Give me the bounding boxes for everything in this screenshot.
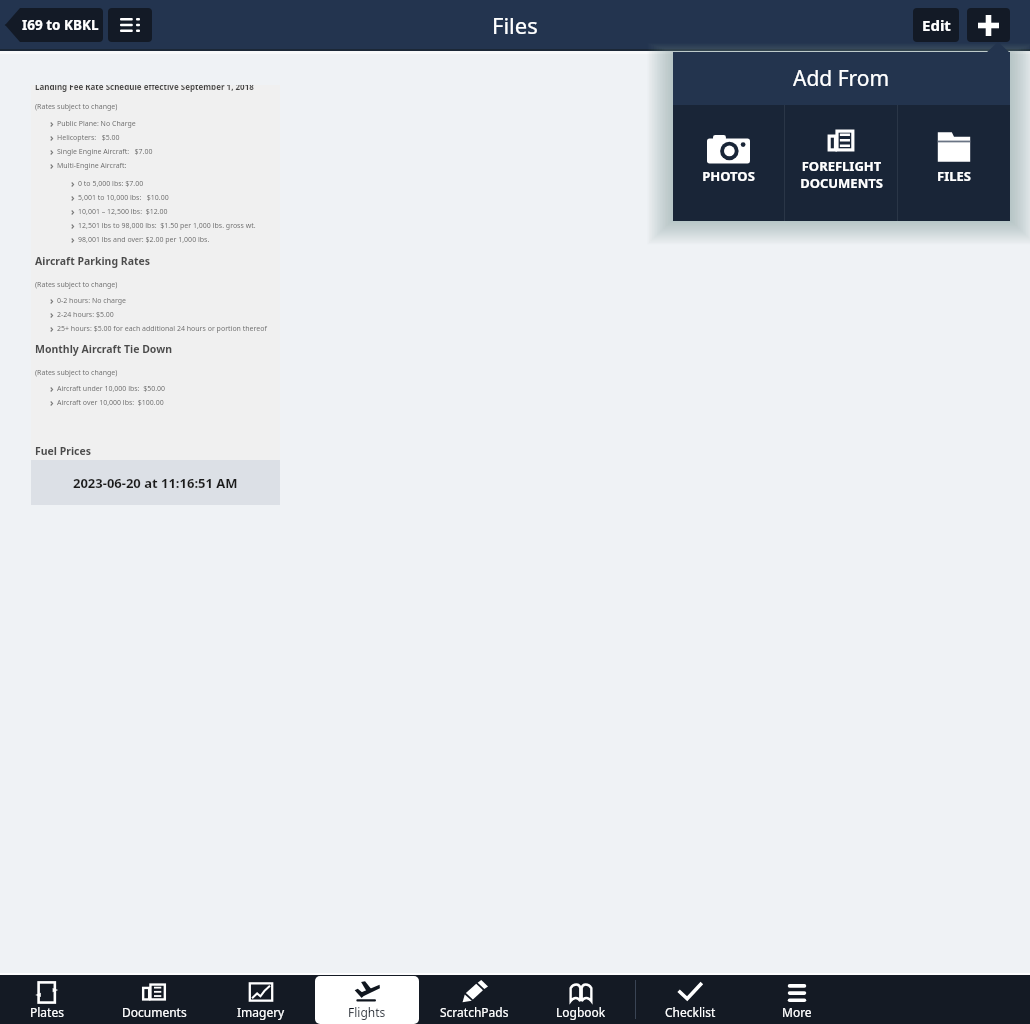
staticText: Add From [793,64,890,93]
staticText: 10,001 – 12,500 lbs: $12.00 [78,207,168,217]
staticText: 0-2 hours: No charge [57,296,126,306]
button[interactable]: List view [108,8,152,42]
staticText: 25+ hours: $5.00 for each additional 24 … [57,324,267,334]
staticText: 2-24 hours: $5.00 [57,310,114,320]
staticText: (Rates subject to change) [35,280,118,290]
staticText: Aircraft over 10,000 lbs: $100.00 [57,398,164,408]
staticText: More [782,1004,812,1020]
staticText: PHOTOS [702,167,755,185]
button[interactable]: I69 to KBKL [5,8,103,42]
button[interactable]: Logbook [529,976,633,1024]
staticText: Flights [348,1004,386,1020]
staticText: Monthly Aircraft Tie Down [35,342,173,356]
button[interactable]: Edit [913,8,959,42]
staticText: FOREFLIGHT DOCUMENTS [800,157,883,192]
staticText: Helicopters: $5.00 [57,133,120,143]
staticText: Fuel Prices [35,444,92,458]
button[interactable]: Flights [315,976,419,1024]
button[interactable]: PHOTOS [673,105,784,221]
staticText: 12,501 lbs to 98,000 lbs: $1.50 per 1,00… [78,221,256,231]
staticText: 0 to 5,000 lbs: $7.00 [78,179,144,189]
staticText: Edit [922,15,951,35]
staticText: FILES [937,167,971,185]
button[interactable]: Checklist [638,976,742,1024]
staticText: Multi-Engine Aircraft: [57,161,127,171]
staticText: (Rates subject to change) [35,368,118,378]
staticText: Public Plane: No Charge [57,119,136,129]
staticText: Plates [30,1004,64,1020]
staticText: 2023-06-20 at 11:16:51 AM [73,474,238,492]
staticText: 98,001 lbs and over: $2.00 per 1,000 lbs… [78,235,210,245]
staticText: Documents [122,1004,187,1020]
staticText: Aircraft under 10,000 lbs: $50.00 [57,384,166,394]
staticText: Files [492,10,538,40]
button[interactable]: FOREFLIGHT DOCUMENTS [785,105,897,221]
button[interactable]: Imagery [209,976,313,1024]
staticText: I69 to KBKL [22,16,99,34]
staticText: Logbook [556,1004,606,1020]
button[interactable]: FILES [898,105,1010,221]
staticText: Checklist [665,1004,716,1020]
button[interactable]: Add [967,8,1010,42]
staticText: Single Engine Aircraft: $7.00 [57,147,153,157]
staticText: Landing Fee Rate Schedule effective Sept… [35,85,254,92]
button[interactable]: More [745,976,849,1024]
staticText: ScratchPads [440,1004,509,1020]
button[interactable]: Plates [0,976,99,1024]
staticText: (Rates subject to change) [35,102,118,112]
staticText: Aircraft Parking Rates [35,254,151,268]
button[interactable]: Documents [102,976,206,1024]
staticText: 5,001 to 10,000 lbs: $10.00 [78,193,169,203]
button[interactable]: ScratchPads [422,976,526,1024]
staticText: Imagery [237,1004,285,1020]
